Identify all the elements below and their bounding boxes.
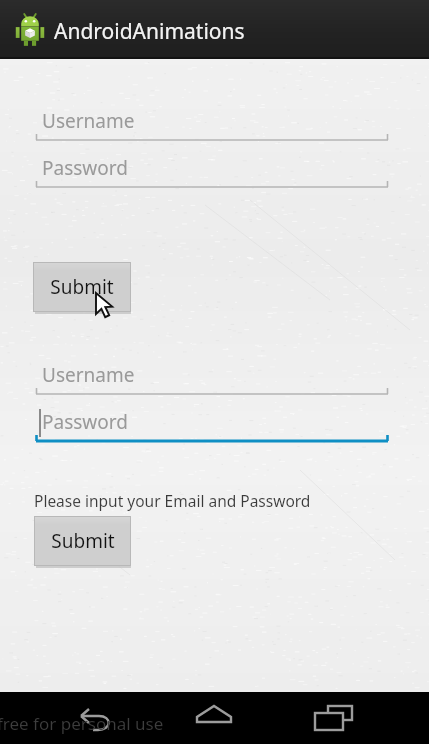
staticText: Submit: [51, 528, 115, 554]
button[interactable]: Submit: [34, 516, 131, 566]
button[interactable]: Password: [30, 405, 394, 449]
staticText: Password: [42, 155, 128, 181]
button[interactable]: Home: [179, 692, 249, 744]
staticText: Submit: [50, 274, 114, 300]
button[interactable]: Username: [30, 358, 394, 402]
button[interactable]: Username: [30, 104, 394, 148]
button[interactable]: Recent apps: [299, 692, 369, 744]
staticText: AndroidAnimations: [54, 17, 245, 46]
staticText: Please input your Email and Password: [34, 490, 311, 511]
button[interactable]: Submit: [33, 262, 131, 312]
button[interactable]: Password: [30, 151, 394, 195]
button[interactable]: Back: [60, 692, 130, 744]
staticText: Username: [42, 108, 135, 134]
staticText: free for personal use: [0, 712, 164, 735]
staticText: Username: [42, 362, 135, 388]
staticText: Password: [42, 409, 128, 435]
